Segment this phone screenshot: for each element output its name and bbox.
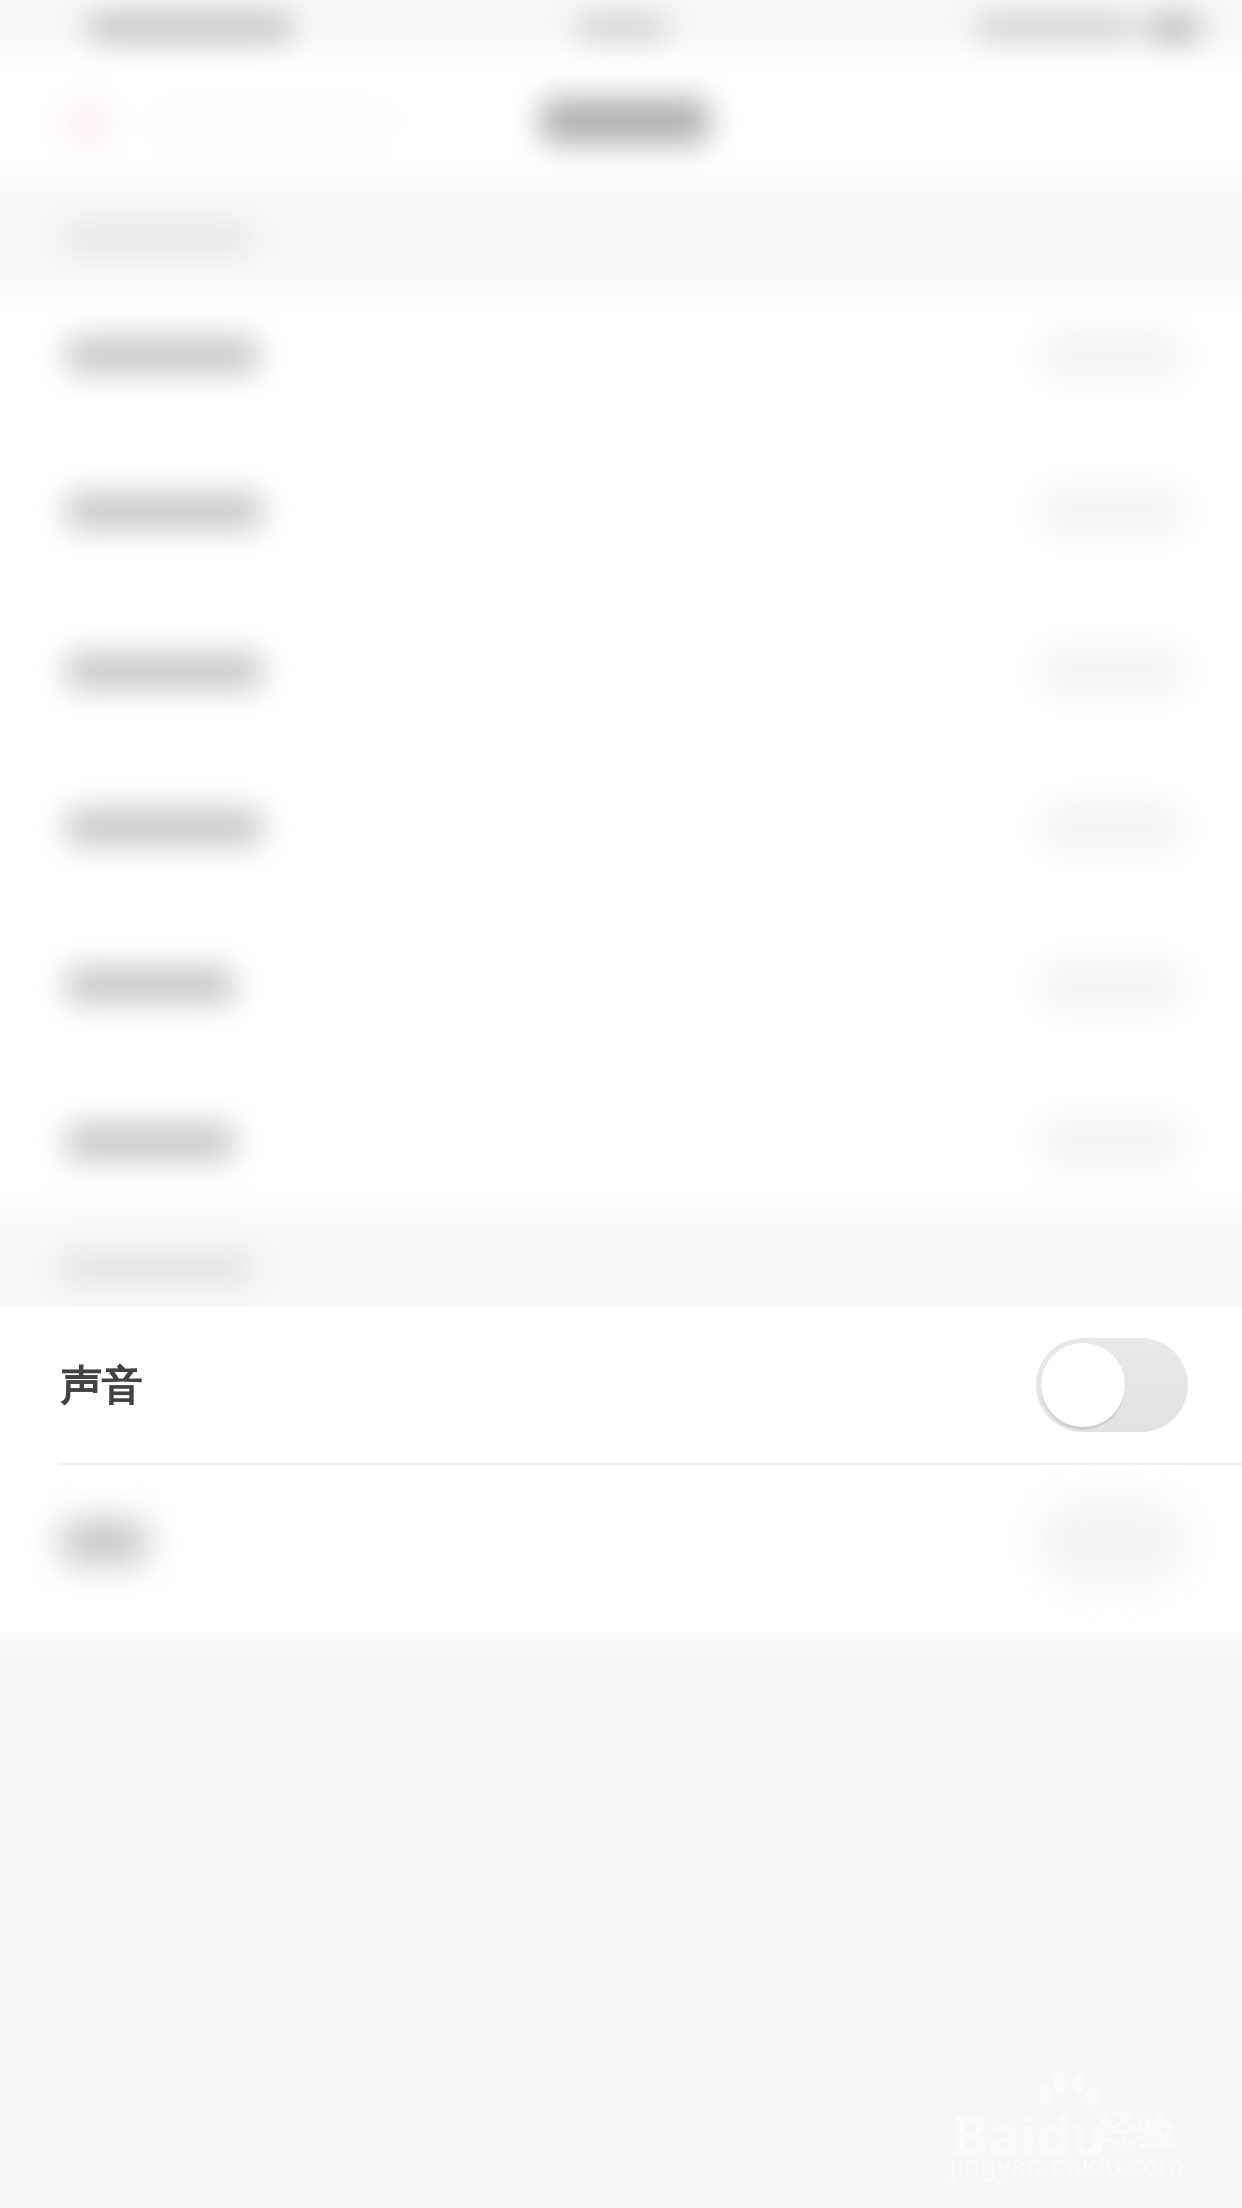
staticText: 声音 [60, 1361, 142, 1413]
button[interactable]: Sound toggle [1036, 1338, 1188, 1432]
button[interactable]: Setting row 3 [0, 601, 1242, 757]
button[interactable]: Setting row 4 [0, 757, 1242, 913]
button[interactable]: Setting row 5 [0, 914, 1242, 1070]
button[interactable]: Setting row 1 [0, 288, 1242, 444]
button[interactable]: Setting row 2 [0, 445, 1242, 601]
button[interactable]: Setting row 6 [0, 1071, 1242, 1227]
button[interactable]: 声音 [0, 1307, 1242, 1463]
